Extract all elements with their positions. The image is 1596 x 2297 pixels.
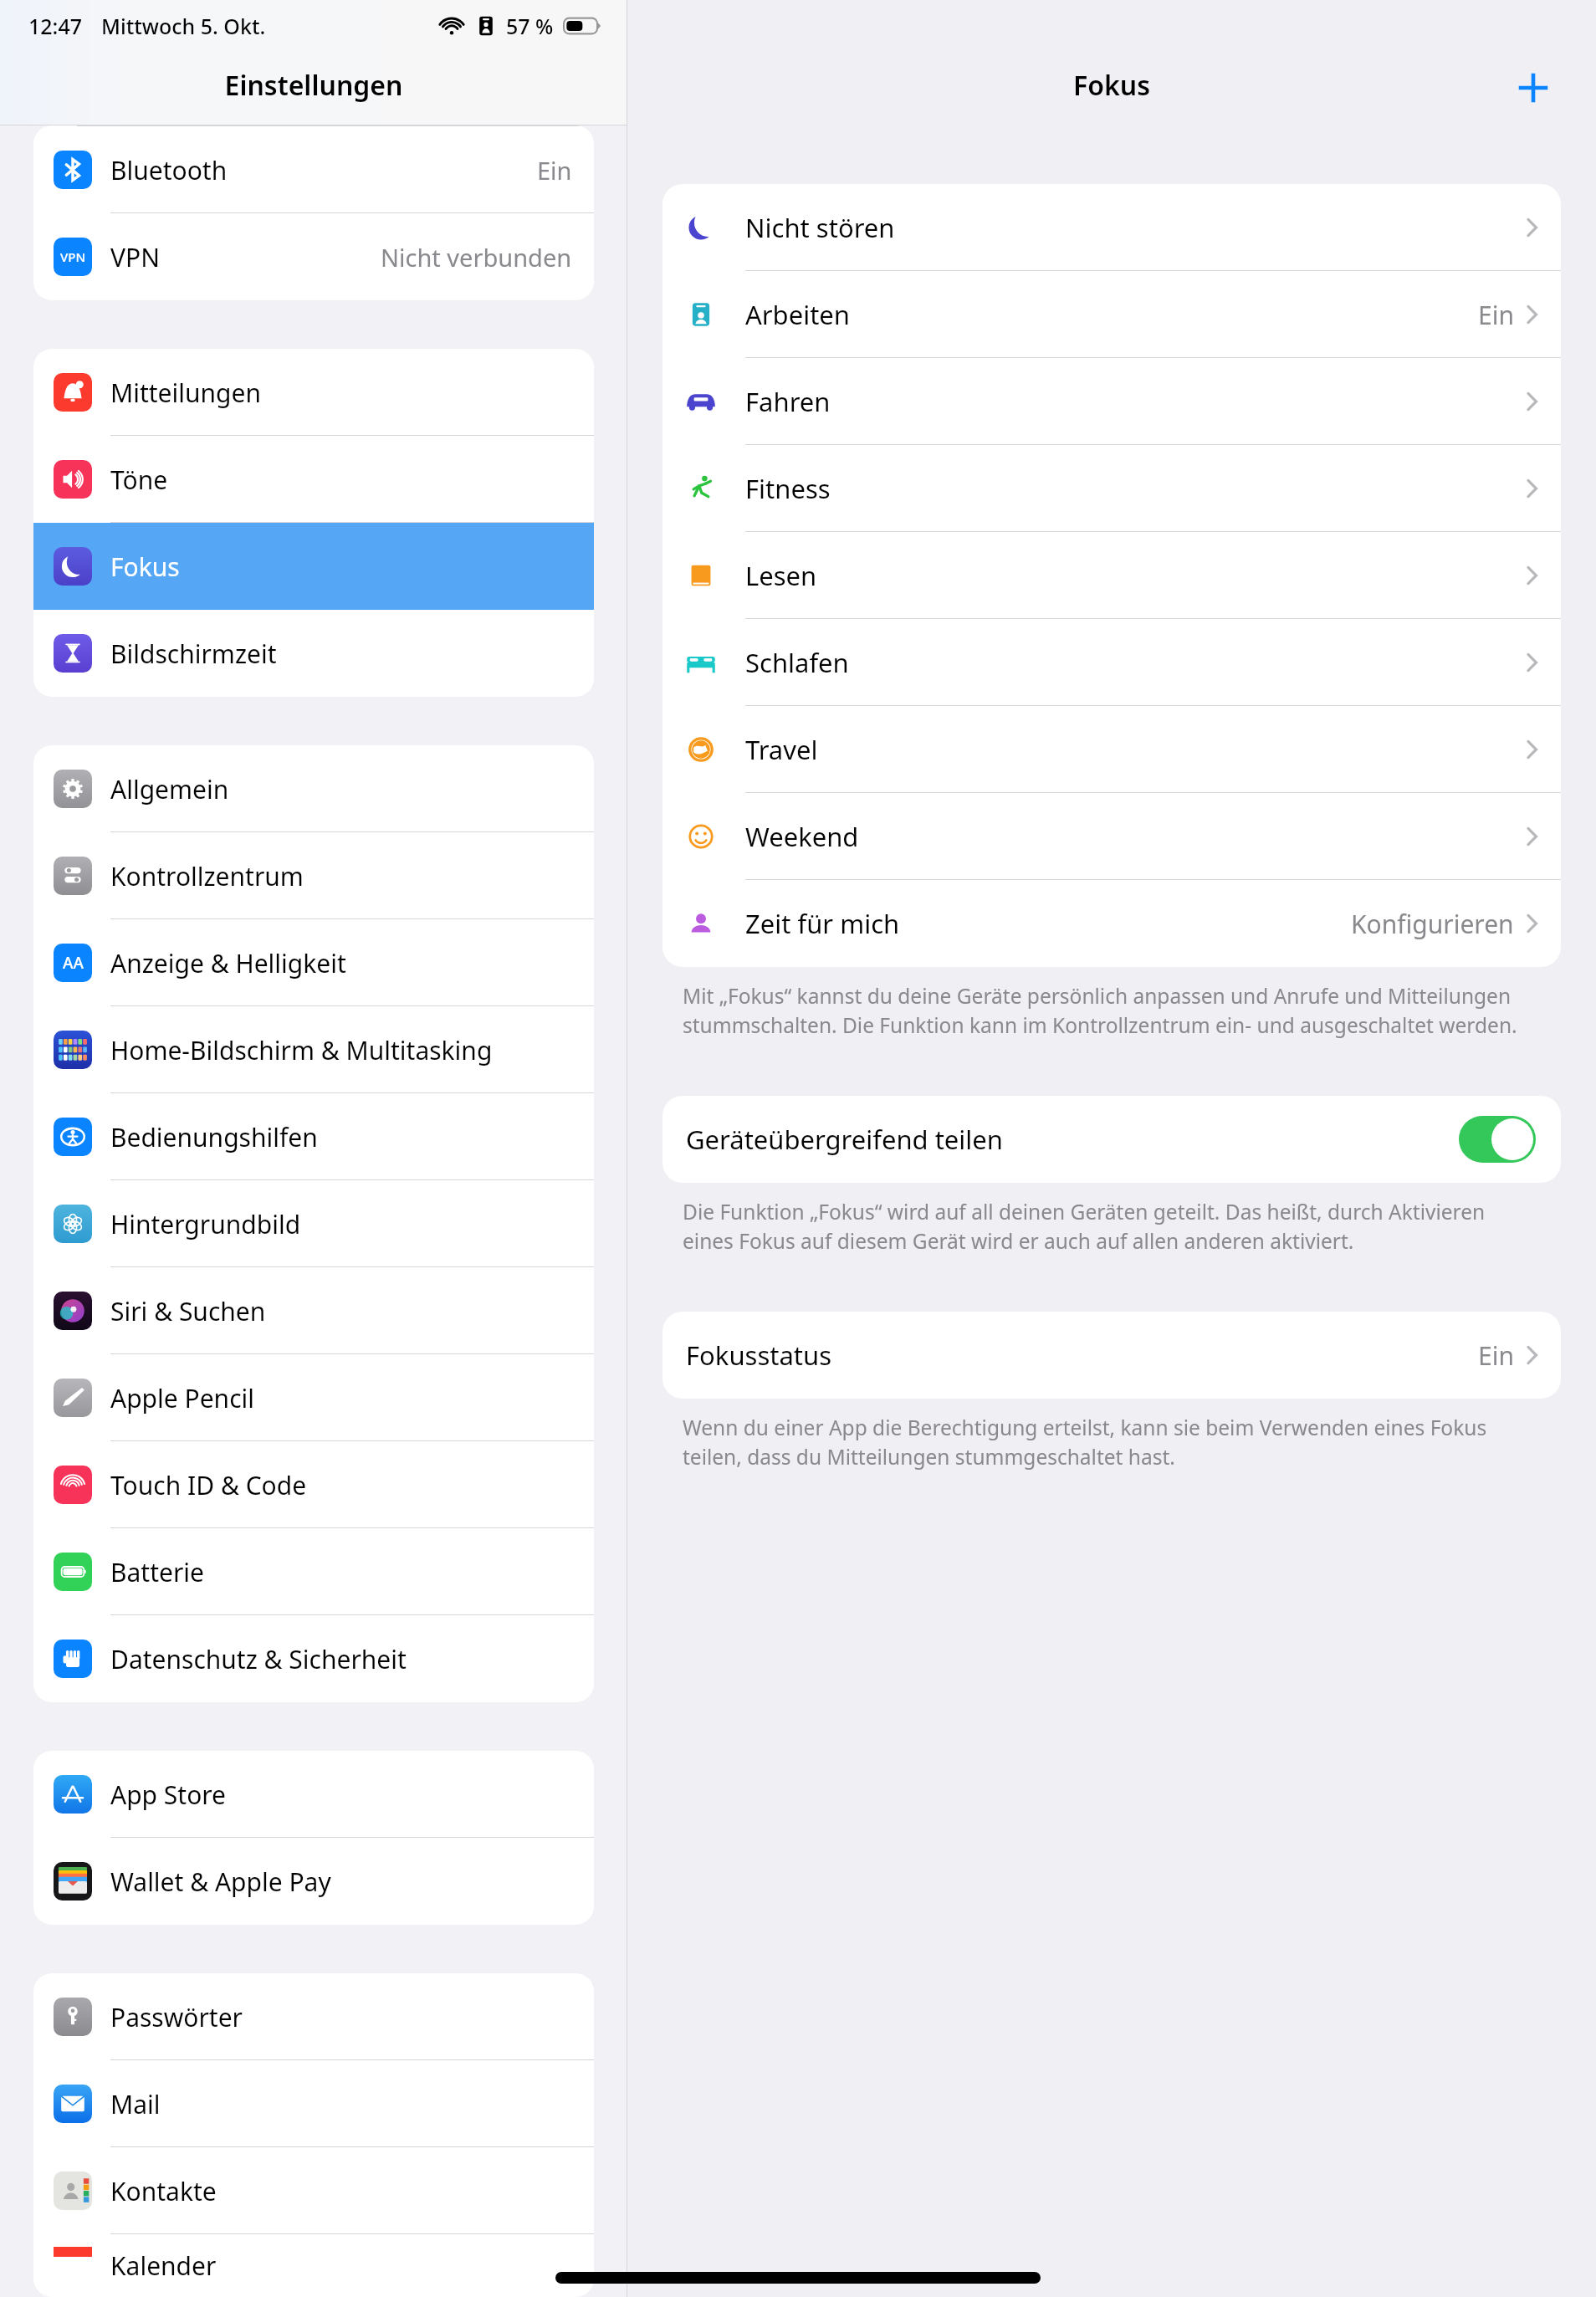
staticText: Geräteübergreifend teilen [686, 1122, 1459, 1157]
button[interactable]: Nicht stören [662, 184, 1561, 271]
button[interactable]: Mitteilungen [33, 349, 594, 436]
staticText: Kontakte [110, 2174, 572, 2208]
button[interactable]: Lesen [662, 532, 1561, 619]
staticText: Ein [1478, 1338, 1514, 1373]
staticText: Bildschirmzeit [110, 637, 572, 671]
button[interactable]: Geräteübergreifend teilen [662, 1096, 1561, 1183]
staticText: 12:47 [28, 12, 83, 40]
staticText: Allgemein [110, 772, 572, 806]
staticText: Fokusstatus [686, 1338, 1478, 1373]
staticText: Fitness [745, 471, 1524, 506]
staticText: Ein [1478, 298, 1514, 332]
staticText: Zeit für mich [745, 906, 1351, 941]
button[interactable]: Töne [33, 436, 594, 523]
staticText: VPN [110, 240, 381, 274]
staticText: Hintergrundbild [110, 1207, 572, 1241]
staticText: Lesen [745, 558, 1524, 593]
staticText: Ein [537, 154, 572, 187]
staticText: Bluetooth [110, 153, 537, 187]
staticText: Fokus [627, 67, 1596, 104]
staticText: Arbeiten [745, 297, 1478, 332]
staticText: Töne [110, 463, 572, 497]
staticText: Mittwoch 5. Okt. [101, 12, 266, 40]
staticText: Einstellungen [0, 67, 627, 104]
staticText: App Store [110, 1778, 572, 1812]
button[interactable]: Batterie [33, 1528, 594, 1615]
button[interactable]: Bluetooth [33, 126, 594, 213]
button[interactable]: Mail [33, 2060, 594, 2147]
button[interactable]: Weekend [662, 793, 1561, 880]
button[interactable]: Fitness [662, 445, 1561, 532]
staticText: Home-Bildschirm & Multitasking [110, 1033, 572, 1067]
staticText: Schlafen [745, 645, 1524, 680]
button[interactable]: Touch ID & Code [33, 1441, 594, 1528]
button[interactable]: Siri & Suchen [33, 1267, 594, 1354]
staticText: Kalender [110, 2248, 572, 2283]
staticText: Apple Pencil [110, 1381, 572, 1415]
staticText: Travel [745, 732, 1524, 767]
button[interactable]: Fokus [33, 523, 594, 610]
button[interactable]: App Store [33, 1751, 594, 1838]
button[interactable]: Fokus hinzufügen [1506, 60, 1561, 115]
button[interactable]: Home-Bildschirm & Multitasking [33, 1006, 594, 1093]
button[interactable]: Bildschirmzeit [33, 610, 594, 697]
button[interactable]: Allgemein [33, 745, 594, 832]
button[interactable]: AA [33, 919, 594, 1006]
staticText: Anzeige & Helligkeit [110, 946, 572, 980]
staticText: Siri & Suchen [110, 1294, 572, 1328]
staticText: Fokus [110, 550, 572, 584]
staticText: Batterie [110, 1555, 572, 1589]
staticText: 57 % [506, 12, 554, 40]
button[interactable]: Zeit für mich [662, 880, 1561, 967]
staticText: Konfigurieren [1351, 907, 1514, 941]
button[interactable]: Apple Pencil [33, 1354, 594, 1441]
staticText: Die Funktion „Fokus“ wird auf all deinen… [683, 1198, 1541, 1255]
button[interactable]: Fokusstatus [662, 1312, 1561, 1399]
button[interactable]: Hintergrundbild [33, 1180, 594, 1267]
staticText: Weekend [745, 819, 1524, 854]
staticText: Mitteilungen [110, 376, 572, 410]
staticText: Passwörter [110, 2000, 572, 2034]
button[interactable]: Fahren [662, 358, 1561, 445]
button[interactable]: VPN [33, 213, 594, 300]
button[interactable]: Kalender [33, 2234, 594, 2297]
staticText: Nicht stören [745, 210, 1524, 245]
button[interactable]: Datenschutz & Sicherheit [33, 1615, 594, 1702]
staticText: Datenschutz & Sicherheit [110, 1642, 572, 1676]
staticText: Mail [110, 2087, 572, 2121]
button[interactable]: Kontakte [33, 2147, 594, 2234]
staticText: Fahren [745, 384, 1524, 419]
staticText: Kontrollzentrum [110, 859, 572, 893]
button[interactable]: Travel [662, 706, 1561, 793]
staticText: Wenn du einer App die Berechtigung ertei… [683, 1414, 1541, 1471]
staticText: VPN [60, 248, 86, 265]
button[interactable]: Arbeiten [662, 271, 1561, 358]
button[interactable]: Wallet & Apple Pay [33, 1838, 594, 1925]
staticText: Nicht verbunden [381, 241, 572, 274]
button[interactable]: Bedienungshilfen [33, 1093, 594, 1180]
button[interactable]: Passwörter [33, 1973, 594, 2060]
staticText: Mit „Fokus“ kannst du deine Geräte persö… [683, 982, 1541, 1039]
button[interactable]: Kontrollzentrum [33, 832, 594, 919]
staticText: Touch ID & Code [110, 1468, 572, 1502]
other: Geräteübergreifend teilen, an [1459, 1116, 1536, 1163]
staticText: Wallet & Apple Pay [110, 1865, 572, 1899]
staticText: AA [63, 952, 84, 974]
staticText: Bedienungshilfen [110, 1120, 572, 1154]
button[interactable]: Schlafen [662, 619, 1561, 706]
